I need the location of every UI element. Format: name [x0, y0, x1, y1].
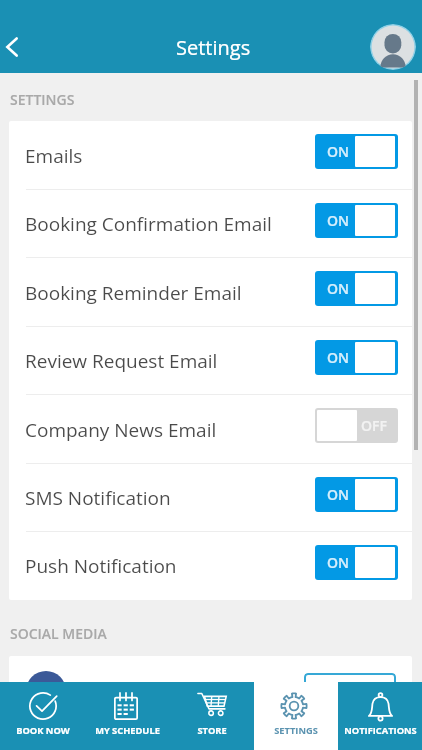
button[interactable]: NOTIFICATIONS [338, 682, 422, 750]
staticText: ON [327, 142, 349, 161]
staticText: ON [327, 211, 349, 230]
staticText: Settings [176, 34, 251, 61]
staticText: ON [327, 348, 349, 367]
button[interactable]: On [315, 134, 398, 169]
staticText: ON [327, 553, 349, 572]
button[interactable]: STORE [170, 682, 254, 750]
button[interactable]: On [315, 203, 398, 238]
button[interactable]: Emails [9, 121, 412, 190]
button[interactable]: SETTINGS [254, 682, 338, 750]
staticText: ON [327, 279, 349, 298]
staticText: Booking Confirmation Email [25, 211, 315, 237]
button[interactable]: Push Notification [9, 532, 412, 600]
button[interactable]: On [315, 545, 398, 580]
staticText: SETTINGS [274, 724, 318, 737]
button[interactable]: Booking Confirmation Email [9, 190, 412, 258]
button[interactable]: On [315, 477, 398, 512]
staticText: Company News Email [25, 417, 315, 443]
button[interactable]: Profile [370, 24, 416, 70]
staticText: OFF [361, 416, 387, 435]
button[interactable]: BOOK NOW [0, 682, 85, 750]
button[interactable]: Company News Email [9, 395, 412, 464]
staticText: Booking Reminder Email [25, 280, 315, 306]
staticText: BOOK NOW [16, 724, 70, 737]
button[interactable]: Review Request Email [9, 327, 412, 395]
staticText: NOTIFICATIONS [344, 724, 417, 737]
staticText: ON [327, 485, 349, 504]
staticText: Review Request Email [25, 348, 315, 374]
button[interactable] [304, 673, 396, 682]
button[interactable]: Back [0, 21, 35, 73]
button[interactable]: Booking Reminder Email [9, 258, 412, 327]
staticText: MY SCHEDULE [95, 724, 160, 737]
staticText: Push Notification [25, 553, 315, 579]
staticText: SMS Notification [25, 485, 315, 511]
button[interactable]: Facebook [26, 671, 66, 682]
staticText: SETTINGS [10, 90, 75, 109]
staticText: Emails [25, 143, 315, 169]
staticText: SOCIAL MEDIA [10, 624, 107, 643]
button[interactable]: MY SCHEDULE [85, 682, 170, 750]
staticText: STORE [197, 724, 227, 737]
button[interactable]: SMS Notification [9, 464, 412, 532]
button[interactable]: On [315, 271, 398, 306]
button[interactable]: Off [315, 408, 398, 443]
button[interactable]: On [315, 340, 398, 375]
